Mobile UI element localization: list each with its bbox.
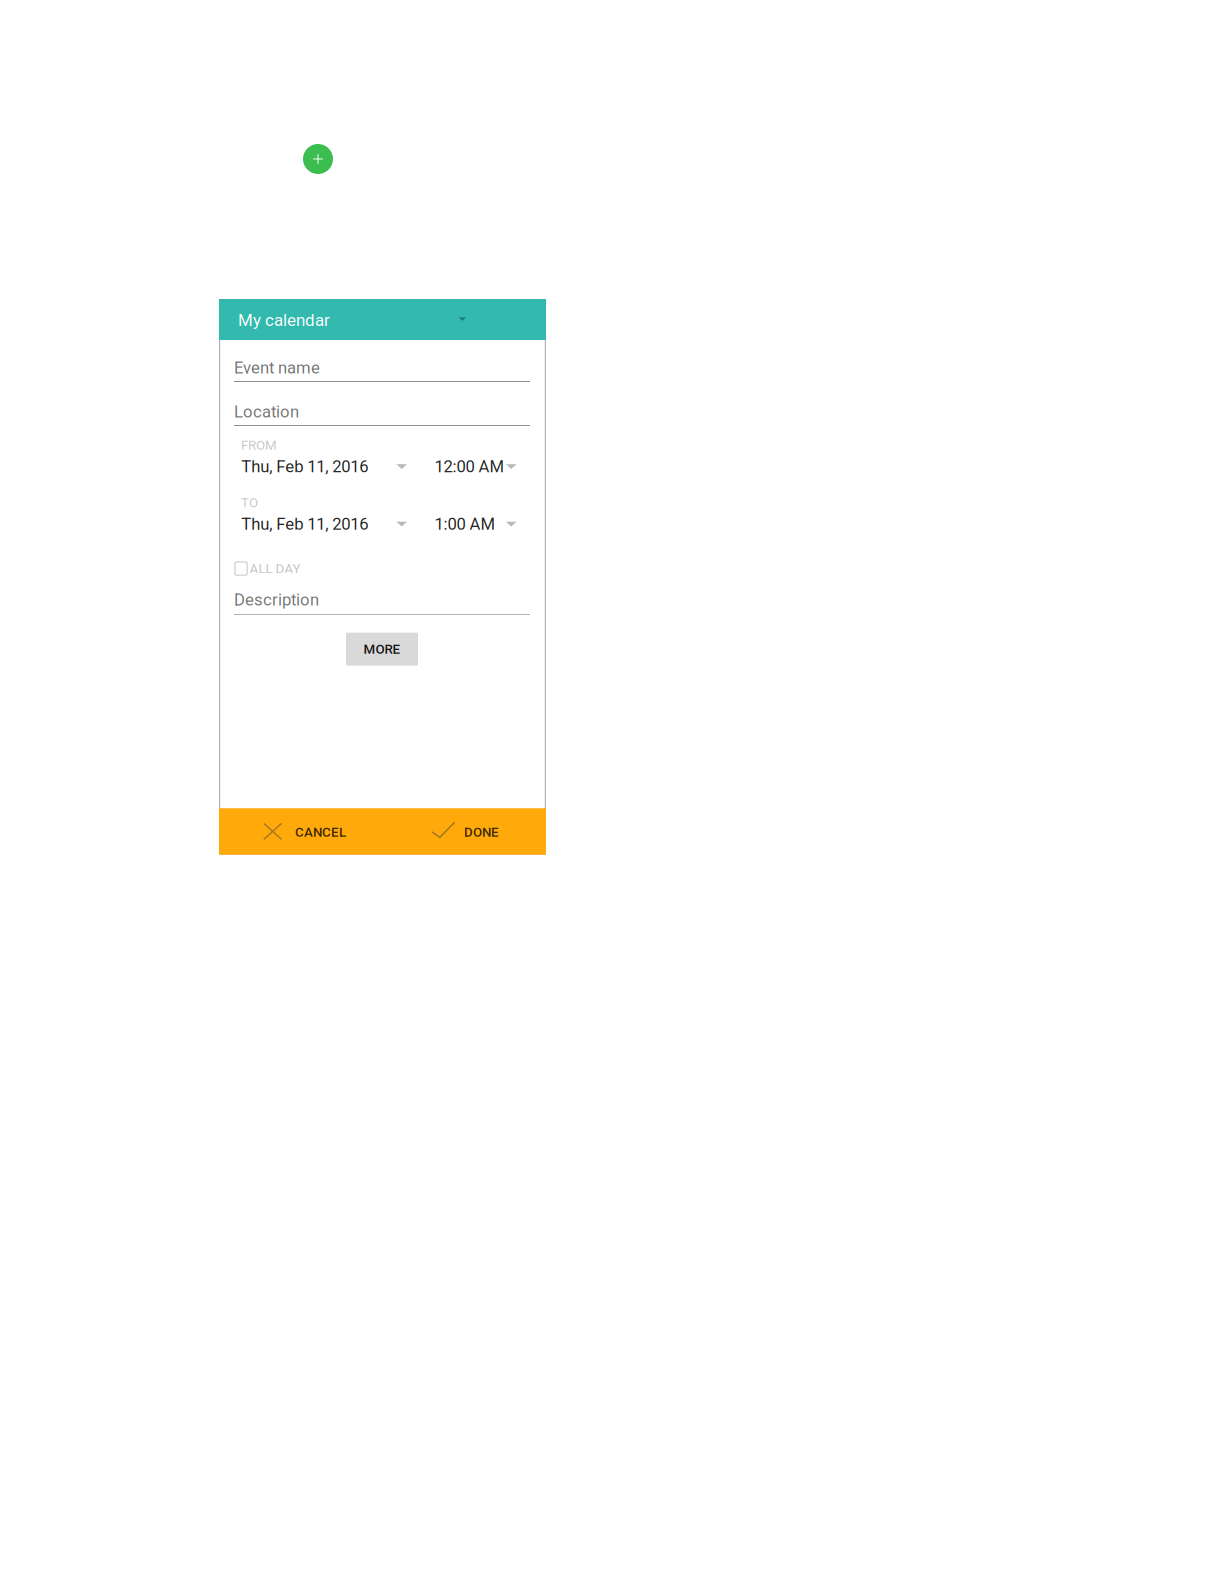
button[interactable]: Location bbox=[234, 402, 530, 432]
staticText: MORE bbox=[363, 641, 400, 657]
staticText: DONE bbox=[464, 824, 499, 840]
staticText: CANCEL bbox=[295, 824, 346, 840]
staticText: TO bbox=[241, 495, 258, 511]
button[interactable]: New event bbox=[303, 144, 333, 174]
button[interactable]: ALL DAY bbox=[234, 561, 344, 579]
staticText: 12:00 AM bbox=[434, 457, 504, 476]
button[interactable]: 12:00 AM bbox=[434, 457, 530, 481]
staticText: Thu, Feb 11, 2016 bbox=[241, 457, 368, 476]
staticText: 1:00 AM bbox=[434, 514, 495, 534]
staticText: Location bbox=[234, 402, 299, 421]
button[interactable]: Event name bbox=[234, 358, 530, 388]
staticText: FROM bbox=[241, 437, 277, 453]
staticText: ALL DAY bbox=[250, 561, 301, 577]
staticText: Event name bbox=[234, 358, 320, 377]
button[interactable]: DONE bbox=[409, 808, 546, 854]
button[interactable]: CANCEL bbox=[219, 808, 409, 854]
staticText: Thu, Feb 11, 2016 bbox=[241, 514, 368, 534]
button[interactable]: Thu, Feb 11, 2016 bbox=[234, 457, 430, 481]
button[interactable]: MORE bbox=[346, 633, 418, 666]
button[interactable]: Description bbox=[234, 590, 530, 621]
staticText: Description bbox=[234, 590, 319, 609]
staticText: My calendar bbox=[238, 310, 330, 330]
button[interactable]: 1:00 AM bbox=[434, 514, 530, 538]
button[interactable]: Thu, Feb 11, 2016 bbox=[234, 514, 430, 538]
button[interactable]: My calendar bbox=[219, 299, 546, 340]
